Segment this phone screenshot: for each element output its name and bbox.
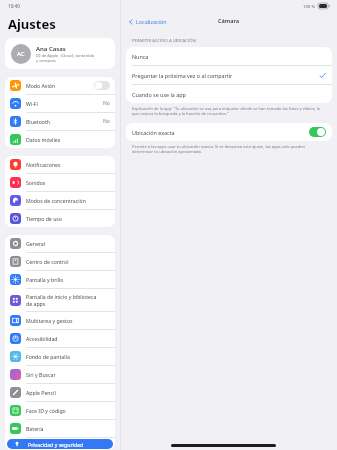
staticText: Face ID y código [26, 407, 66, 414]
button[interactable]: Atrás [126, 16, 169, 27]
button[interactable]: Multitarea y gestos [5, 312, 115, 329]
staticText: Modos de concentración [26, 197, 86, 204]
staticText: Multitarea y gestos [26, 317, 73, 324]
staticText: No [103, 118, 110, 125]
other: Sonidos [10, 177, 21, 188]
button[interactable]: Tiempo de uso [5, 210, 115, 227]
staticText: Tiempo de uso [26, 215, 62, 222]
other: Apple Pencil [10, 387, 21, 398]
staticText: Siri y Buscar [26, 371, 56, 378]
button[interactable]: Siri y Buscar [5, 366, 115, 383]
button[interactable]: Modo Avión [5, 77, 115, 94]
button[interactable]: Wi-Fi [5, 95, 115, 112]
staticText: PERMITIR ACCESO A UBICACIÓN [132, 38, 196, 44]
other: Modo Avión [10, 80, 21, 91]
other: Tiempo de uso [10, 213, 21, 224]
other: Datos móviles [10, 134, 21, 145]
button[interactable]: Activado [309, 127, 326, 137]
staticText: Wi-Fi [26, 100, 38, 107]
button[interactable]: Pantalla y brillo [5, 271, 115, 288]
staticText: Cuando se use la app [132, 91, 326, 98]
other: Privacidad y seguridad [12, 439, 23, 449]
button[interactable]: Ubicación exacta [126, 123, 332, 141]
button[interactable]: Nunca [126, 47, 332, 65]
staticText: Sonidos [26, 179, 46, 186]
other: General [10, 238, 21, 249]
staticText: Localización [136, 18, 167, 25]
staticText: Explicación de la app: "Tu ubicación se … [132, 106, 326, 116]
button[interactable]: Apple Pencil [5, 384, 115, 401]
other: Pantalla y brillo [10, 274, 21, 285]
staticText: General [26, 240, 46, 247]
staticText: Accesibilidad [26, 335, 58, 342]
other: Siri y Buscar [10, 369, 21, 380]
other: Notificaciones [10, 159, 21, 170]
staticText: ID de Apple, iCloud, contenido y compras [36, 53, 95, 63]
button[interactable]: Preguntar la próxima vez o al compartir [126, 66, 332, 84]
button[interactable]: Fondo de pantalla [5, 348, 115, 365]
staticText: Fondo de pantalla [26, 353, 70, 360]
button[interactable]: Datos móviles [5, 131, 115, 148]
button[interactable]: Privacidad y seguridad [7, 439, 113, 449]
staticText: Notificaciones [26, 161, 61, 168]
staticText: Preguntar la próxima vez o al compartir [132, 72, 319, 79]
button[interactable]: Bluetooth [5, 113, 115, 130]
other: Centro de control [10, 256, 21, 267]
button[interactable]: Pantalla de inicio y biblioteca [5, 289, 115, 311]
staticText: 10:40 [8, 3, 20, 9]
button[interactable]: Face ID y código [5, 402, 115, 419]
staticText: Datos móviles [26, 136, 61, 143]
staticText: Pantalla y brillo [26, 276, 64, 283]
staticText: Cámara [218, 17, 240, 25]
button[interactable]: Cuando se use la app [126, 85, 332, 103]
staticText: Ubicación exacta [132, 129, 309, 136]
staticText: Permite a las apps usar tu ubicación exa… [132, 144, 326, 154]
staticText: Modo Avión [26, 82, 56, 89]
staticText: Privacidad y seguridad [28, 441, 84, 448]
button[interactable]: Accesibilidad [5, 330, 115, 347]
staticText: Centro de control [26, 258, 69, 265]
other: Pantalla de inicio y biblioteca [10, 295, 21, 306]
other: Multitarea y gestos [10, 315, 21, 326]
button[interactable]: General [5, 235, 115, 252]
button[interactable]: Desactivado [94, 81, 110, 90]
button[interactable]: Batería [5, 420, 115, 437]
staticText: Bluetooth [26, 118, 51, 125]
button[interactable]: Centro de control [5, 253, 115, 270]
other: Wi-Fi [10, 98, 21, 109]
staticText: Batería [26, 425, 44, 432]
other: Seleccionado [319, 72, 326, 79]
staticText: de apps [26, 300, 46, 307]
other: Bluetooth [10, 116, 21, 127]
staticText: Pantalla de inicio y biblioteca [26, 293, 97, 300]
staticText: Ana Casas [36, 45, 66, 53]
staticText: 100 % [303, 3, 316, 9]
staticText: Nunca [132, 53, 326, 60]
staticText: Ajustes [8, 15, 56, 33]
button[interactable]: AC [5, 38, 115, 69]
staticText: No [103, 100, 110, 107]
button[interactable]: Notificaciones [5, 156, 115, 173]
other: Atrás [128, 19, 134, 25]
staticText: AC [17, 50, 25, 58]
other: Batería [10, 423, 21, 434]
other: Fondo de pantalla [10, 351, 21, 362]
button[interactable]: Modos de concentración [5, 192, 115, 209]
other: Face ID y código [10, 405, 21, 416]
other: Accesibilidad [10, 333, 21, 344]
button[interactable]: Sonidos [5, 174, 115, 191]
other: Modos de concentración [10, 195, 21, 206]
staticText: Apple Pencil [26, 389, 56, 396]
